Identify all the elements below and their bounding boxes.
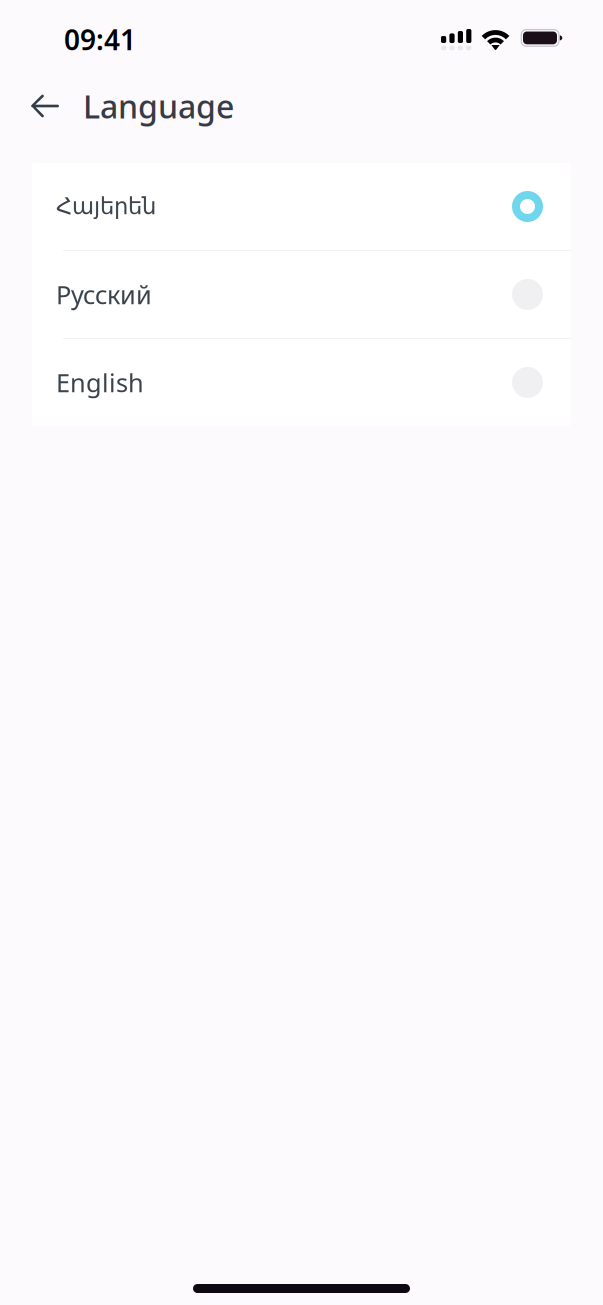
button[interactable]: Հայերեն	[32, 163, 571, 250]
button[interactable]: Back	[23, 84, 67, 128]
staticText: 09:41	[64, 21, 136, 58]
staticText: Հայերեն	[56, 194, 156, 219]
staticText: English	[56, 366, 144, 399]
button[interactable]: Русский	[32, 251, 571, 338]
staticText: Language	[83, 85, 234, 127]
button[interactable]: English	[32, 339, 571, 426]
staticText: Русский	[56, 278, 152, 311]
